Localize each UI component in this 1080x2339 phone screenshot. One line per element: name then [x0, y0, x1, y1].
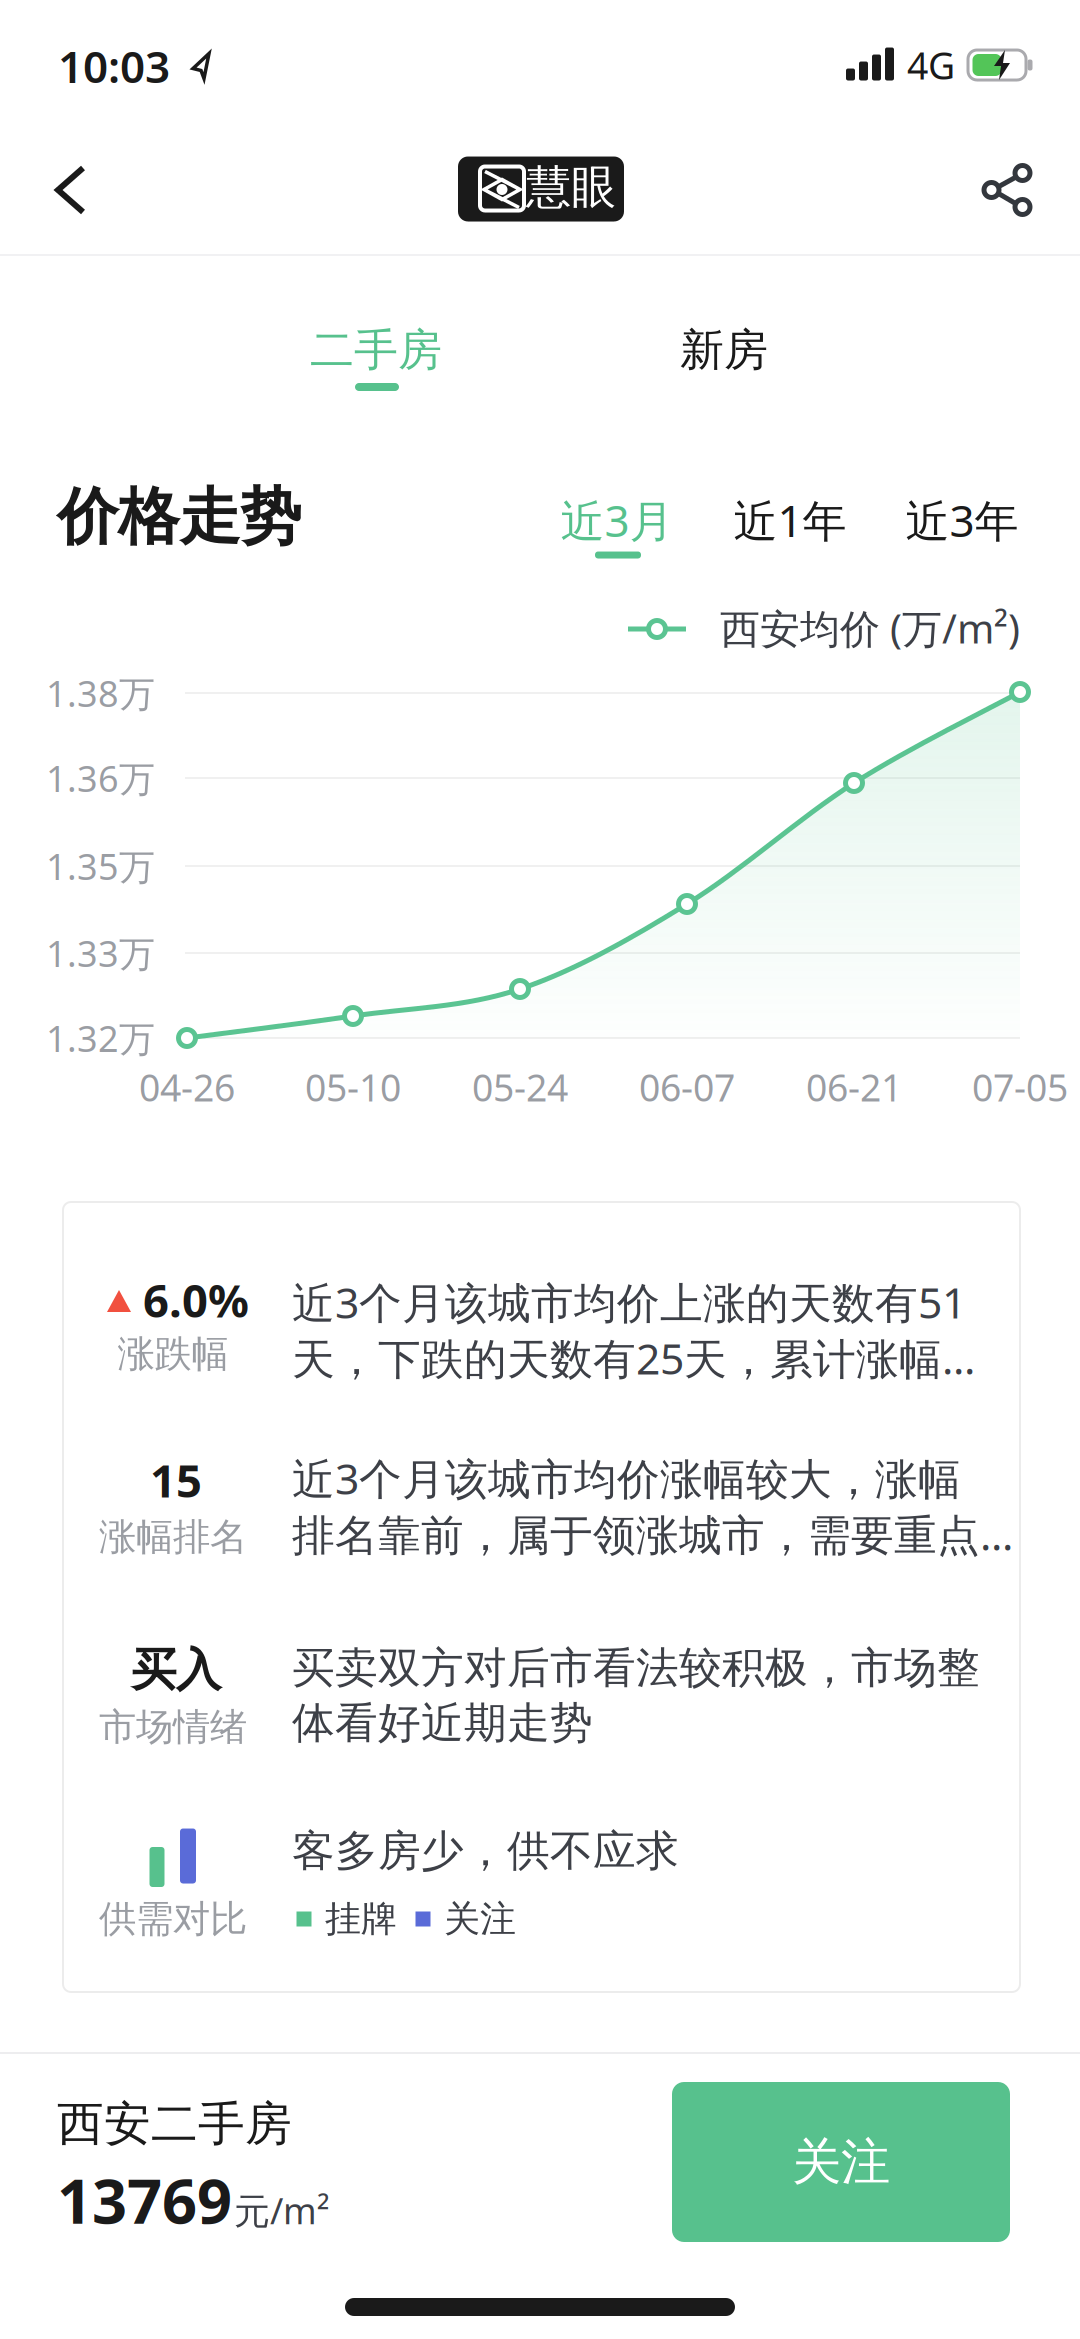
staticText: 市场情绪	[99, 1704, 247, 1750]
staticText: 价格走势	[57, 479, 301, 555]
staticText: 6.0%	[143, 1270, 249, 1330]
button[interactable]: 关注	[672, 2082, 1010, 2242]
staticText: 西安均价 (万/m²)	[720, 601, 1020, 654]
staticText: 近1年	[733, 491, 846, 549]
button[interactable]: 近1年	[727, 485, 852, 555]
staticText: 05-24	[472, 1062, 568, 1112]
staticText: 05-10	[305, 1062, 401, 1112]
staticText: 关注	[792, 2132, 890, 2192]
staticText: 1.36万	[46, 754, 155, 802]
button[interactable]: 新房	[670, 313, 778, 387]
button[interactable]: 近3年	[899, 485, 1024, 555]
staticText: 07-05	[972, 1062, 1068, 1112]
button[interactable]: Back	[36, 146, 106, 234]
staticText: 近3个月该城市均价上涨的天数有51	[292, 1274, 966, 1330]
staticText: 1.38万	[46, 669, 155, 717]
staticText: 元/m²	[234, 2186, 330, 2234]
staticText: 慧眼	[526, 160, 616, 215]
staticText: 1.32万	[46, 1014, 155, 1062]
button[interactable]: Share	[967, 155, 1046, 225]
staticText: 西安二手房	[57, 2095, 292, 2153]
staticText: 06-21	[806, 1062, 902, 1112]
button[interactable]: 近3月	[554, 485, 679, 555]
staticText: 二手房	[310, 323, 442, 377]
staticText: 近3个月该城市均价涨幅较大，涨幅	[292, 1450, 961, 1506]
button[interactable]: 慧眼	[458, 156, 624, 221]
staticText: 13769	[57, 2159, 232, 2241]
staticText: 供需对比	[99, 1896, 247, 1942]
staticText: 1.33万	[46, 929, 155, 977]
staticText: 天，下跌的天数有25天，累计涨幅...	[292, 1330, 975, 1386]
button[interactable]: 二手房	[300, 313, 452, 387]
staticText: 排名靠前，属于领涨城市，需要重点...	[292, 1506, 1013, 1562]
staticText: 买入	[131, 1642, 221, 1698]
staticText: 涨幅排名	[99, 1514, 247, 1560]
staticText: 关注	[444, 1897, 516, 1941]
staticText: 1.35万	[46, 842, 155, 890]
staticText: 近3月	[560, 491, 673, 549]
staticText: 涨跌幅	[117, 1331, 228, 1377]
staticText: 挂牌	[325, 1897, 397, 1941]
staticText: 新房	[680, 323, 768, 377]
staticText: 体看好近期走势	[292, 1697, 593, 1749]
staticText: 15	[150, 1450, 202, 1510]
staticText: 10:03	[58, 37, 170, 95]
staticText: 06-07	[639, 1062, 735, 1112]
staticText: 客多房少，供不应求	[292, 1825, 679, 1877]
staticText: 4G	[907, 40, 955, 90]
staticText: 04-26	[139, 1062, 235, 1112]
staticText: 买卖双方对后市看法较积极，市场整	[292, 1642, 980, 1694]
staticText: 近3年	[905, 491, 1018, 549]
